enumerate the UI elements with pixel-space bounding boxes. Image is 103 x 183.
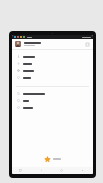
- button[interactable]: [12, 97, 93, 104]
- button[interactable]: Settings: [84, 41, 90, 47]
- button[interactable]: [12, 74, 93, 81]
- button[interactable]: Recents: [18, 168, 23, 173]
- button[interactable]: Back: [39, 168, 44, 173]
- button[interactable]: [12, 90, 93, 97]
- button[interactable]: [12, 104, 93, 111]
- button[interactable]: Home: [59, 168, 64, 173]
- button[interactable]: Settings: [12, 39, 93, 49]
- button[interactable]: [12, 60, 93, 67]
- button[interactable]: [12, 67, 93, 74]
- button[interactable]: [12, 53, 93, 60]
- button[interactable]: Overview: [80, 168, 85, 173]
- button[interactable]: [12, 153, 93, 165]
